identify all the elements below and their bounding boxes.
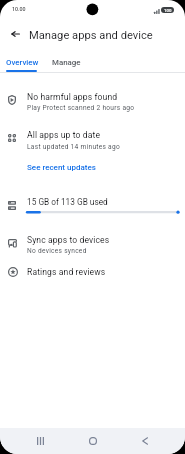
button[interactable]: Overview [0, 52, 45, 72]
button[interactable]: See recent updates [22, 159, 100, 176]
staticText: See recent updates [27, 163, 96, 172]
staticText: Play Protect scanned 2 hours ago [27, 104, 135, 112]
staticText: No devices synced [27, 247, 87, 255]
staticText: Manage [52, 58, 81, 67]
button[interactable]: Manage [45, 52, 88, 72]
button[interactable]: Recents [27, 428, 53, 454]
staticText: Sync apps to devices [27, 235, 110, 245]
staticText: 100 [164, 8, 172, 13]
staticText: Ratings and reviews [27, 267, 106, 277]
button[interactable]: Back [132, 428, 158, 454]
button[interactable] [0, 118, 185, 154]
staticText: Overview [6, 58, 39, 67]
button[interactable]: Home [80, 428, 106, 454]
button[interactable]: Back [5, 24, 25, 44]
staticText: No harmful apps found [27, 92, 118, 102]
staticText: All apps up to date [27, 130, 101, 140]
staticText: 15 GB of 113 GB used [27, 197, 108, 207]
staticText: Last updated 14 minutes ago [27, 143, 120, 151]
button[interactable] [0, 82, 185, 118]
button[interactable] [0, 260, 185, 284]
staticText: 10.00 [12, 6, 26, 12]
button[interactable] [0, 226, 185, 258]
staticText: Manage apps and device [29, 29, 153, 42]
button[interactable] [0, 188, 185, 218]
